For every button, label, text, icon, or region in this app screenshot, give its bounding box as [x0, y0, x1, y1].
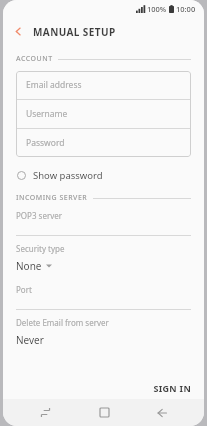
staticText: ACCOUNT	[16, 54, 53, 64]
button[interactable]: Port	[16, 277, 191, 310]
staticText: Show password	[33, 169, 103, 182]
staticText: 100%	[147, 4, 167, 14]
staticText: POP3 server	[16, 210, 63, 221]
button[interactable]: Show password	[3, 164, 204, 186]
button[interactable]: SIGN IN	[140, 378, 204, 398]
button[interactable]: Back	[145, 399, 179, 426]
staticText: 10:00	[176, 4, 196, 14]
staticText: Password	[26, 137, 65, 149]
staticText: INCOMING SERVER	[16, 193, 88, 203]
staticText: Username	[26, 108, 68, 120]
button[interactable]: Email address	[16, 71, 191, 100]
button[interactable]: Delete Email from server	[16, 310, 191, 351]
staticText: Port	[16, 284, 32, 295]
staticText: Email address	[26, 79, 82, 91]
staticText: SIGN IN	[153, 382, 191, 394]
button[interactable]: Back	[3, 17, 33, 46]
staticText: Security type	[16, 243, 65, 254]
button[interactable]: POP3 server	[16, 203, 191, 236]
button[interactable]: Username	[16, 100, 191, 129]
staticText: None	[16, 259, 42, 273]
button[interactable]: Recent apps	[28, 399, 62, 426]
staticText: MANUAL SETUP	[33, 25, 116, 39]
button[interactable]: Security type	[16, 236, 191, 277]
button[interactable]: Home	[87, 399, 121, 426]
button[interactable]: Password	[16, 129, 191, 157]
staticText: Never	[16, 333, 44, 347]
staticText: Delete Email from server	[16, 317, 109, 328]
